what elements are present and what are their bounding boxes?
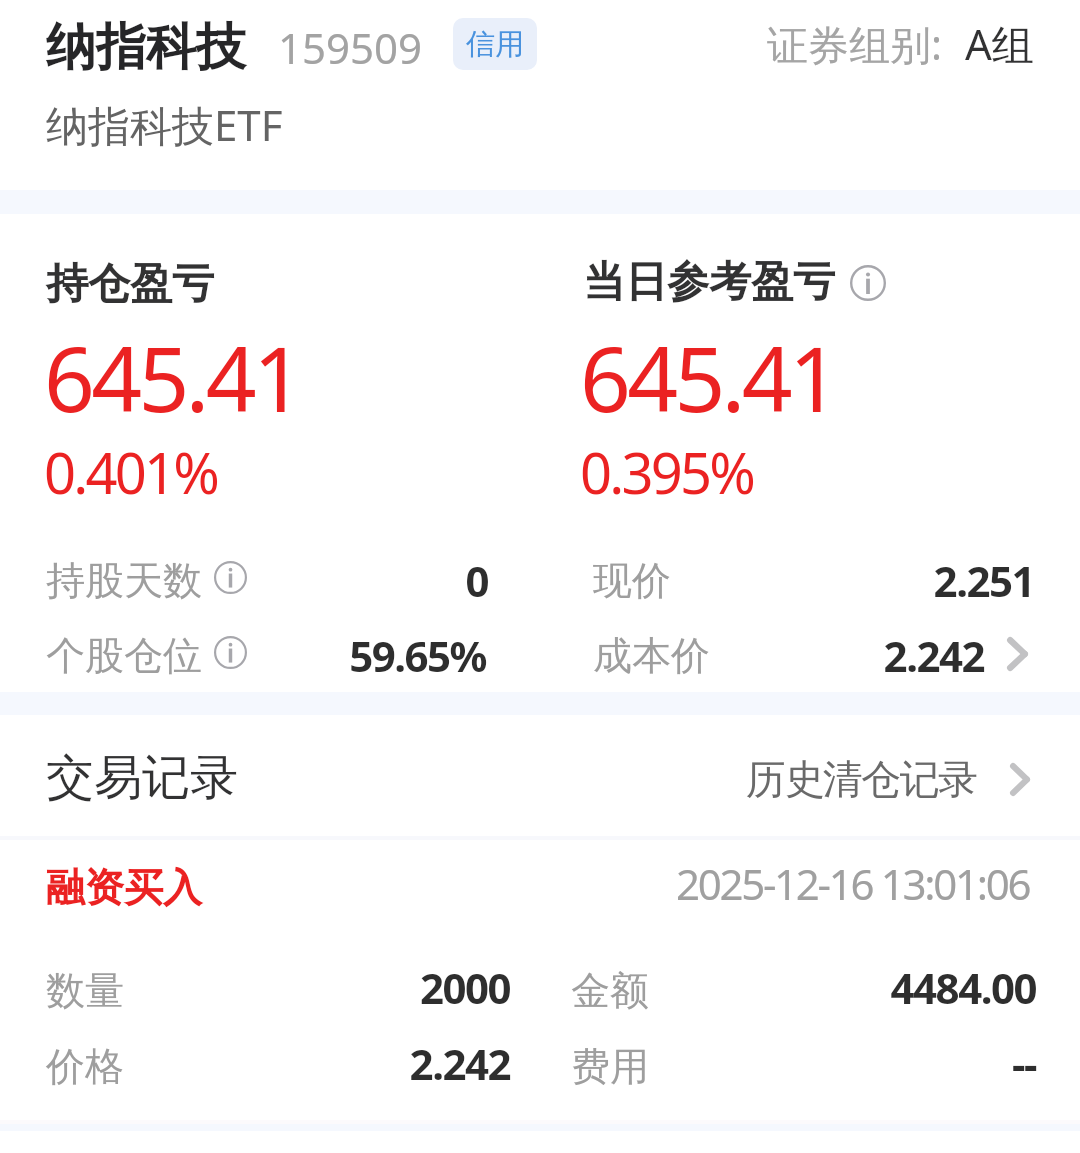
- staticText: 融资买入: [46, 863, 202, 912]
- other: 当日参考盈亏说明: [850, 265, 886, 301]
- staticText: 价格: [46, 1042, 124, 1091]
- staticText: 成本价: [593, 631, 710, 680]
- staticText: 2.242: [110, 1035, 510, 1092]
- staticText: 持股天数: [46, 556, 202, 605]
- staticText: 645.41: [44, 317, 301, 438]
- staticText: 2.251: [634, 552, 1034, 609]
- staticText: 2025-12-16 13:01:06: [676, 855, 1030, 912]
- staticText: 4484.00: [636, 959, 1036, 1016]
- button[interactable]: 成本价 2.242: [540, 618, 1080, 692]
- staticText: 历史清仓记录: [746, 754, 977, 804]
- button[interactable]: 信用: [453, 18, 537, 70]
- staticText: 2000: [110, 959, 510, 1016]
- button[interactable]: 当日参考盈亏: [583, 256, 886, 309]
- staticText: 金额: [571, 966, 649, 1015]
- staticText: 纳指科技ETF: [46, 96, 283, 153]
- staticText: 59.65%: [86, 627, 486, 684]
- other: 个股仓位说明: [214, 636, 247, 669]
- staticText: 交易记录: [46, 748, 238, 808]
- button[interactable]: 证券组别:: [767, 15, 1034, 72]
- staticText: 159509: [278, 19, 423, 76]
- button[interactable]: [0, 840, 1080, 1120]
- staticText: 现价: [593, 556, 671, 605]
- staticText: A组: [965, 15, 1034, 72]
- staticText: 费用: [571, 1042, 649, 1091]
- staticText: 2.242: [584, 627, 984, 684]
- staticText: 0.395%: [580, 434, 753, 510]
- staticText: 当日参考盈亏: [583, 256, 835, 309]
- button[interactable]: 纳指科技: [46, 16, 423, 79]
- staticText: 0.401%: [44, 434, 217, 510]
- staticText: 0: [88, 552, 488, 609]
- staticText: 纳指科技: [46, 16, 246, 79]
- staticText: --: [636, 1035, 1036, 1092]
- button[interactable]: 历史清仓记录: [726, 736, 1056, 822]
- staticText: 645.41: [580, 317, 837, 438]
- other: 持股天数说明: [214, 561, 247, 594]
- staticText: 证券组别:: [767, 16, 942, 72]
- staticText: 信用: [466, 26, 524, 63]
- staticText: 持仓盈亏: [46, 258, 214, 311]
- staticText: 个股仓位: [46, 631, 202, 680]
- staticText: 数量: [46, 966, 124, 1015]
